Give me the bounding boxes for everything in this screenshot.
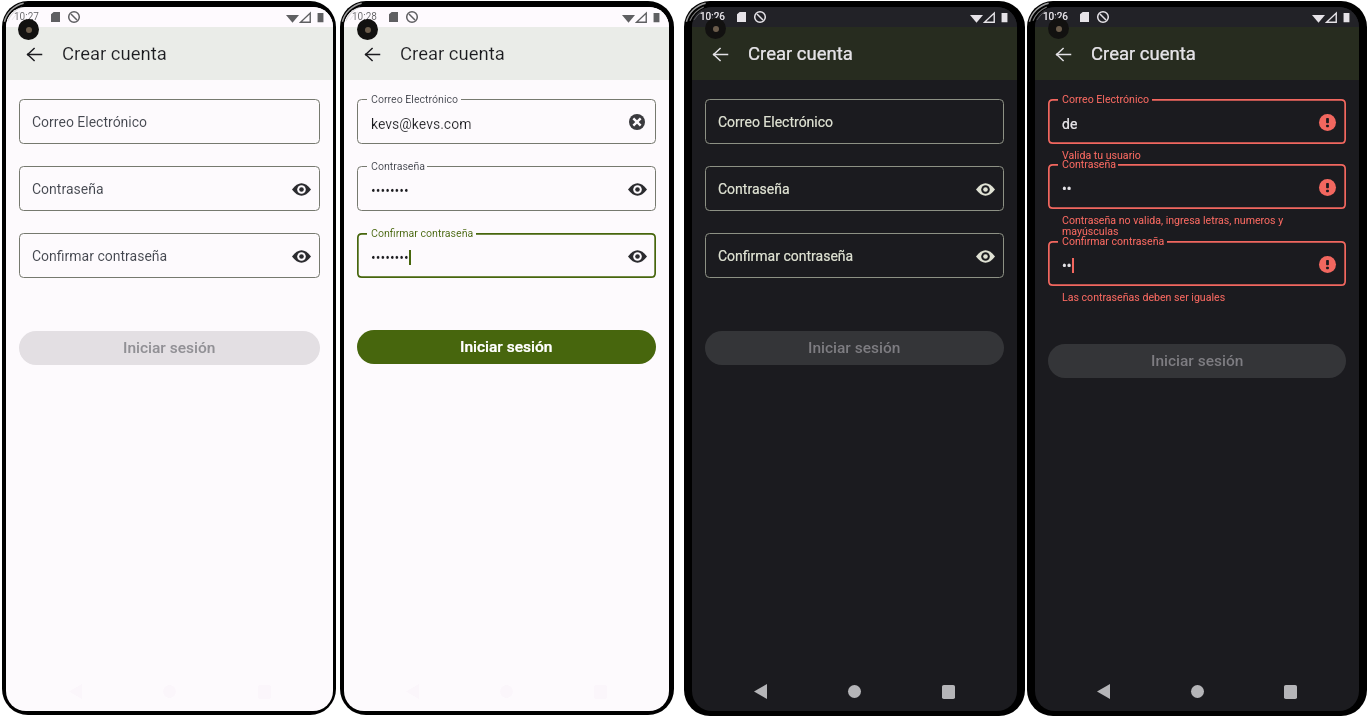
button[interactable]: Iniciar sesión xyxy=(1048,344,1346,378)
button[interactable]: Show password xyxy=(623,175,651,203)
staticText: Confirmar contraseña xyxy=(32,248,168,264)
button[interactable]: Back xyxy=(704,38,736,70)
button[interactable]: Iniciar sesión xyxy=(705,331,1004,365)
staticText: Iniciar sesión xyxy=(123,339,216,357)
staticText: Correo Electrónico xyxy=(718,114,834,130)
button[interactable]: Correo Electrónico xyxy=(1048,99,1346,144)
staticText: Confirmar contraseña xyxy=(718,248,854,264)
button[interactable]: Clear text xyxy=(623,108,651,136)
staticText: Correo Electrónico xyxy=(32,114,148,130)
button[interactable]: Show password xyxy=(623,242,651,270)
staticText: Crear cuenta xyxy=(62,43,167,65)
button[interactable]: Back xyxy=(1078,672,1129,711)
staticText: 10:26 xyxy=(700,11,725,23)
staticText: •••••••• xyxy=(371,250,409,266)
button[interactable]: Recent apps xyxy=(1265,672,1316,711)
button[interactable]: Contraseña xyxy=(1048,164,1346,209)
button[interactable]: Iniciar sesión xyxy=(357,330,656,364)
button[interactable]: Show password xyxy=(287,242,315,270)
staticText: 10:26 xyxy=(1043,11,1068,23)
staticText: •••••••• xyxy=(371,183,409,199)
staticText: Crear cuenta xyxy=(1091,43,1196,65)
button[interactable]: Show password xyxy=(971,242,999,270)
button[interactable]: Confirmar contraseña xyxy=(357,233,656,278)
button[interactable]: Recent apps xyxy=(923,672,974,711)
staticText: kevs@kevs.com xyxy=(371,116,472,132)
staticText: Correo Electrónico xyxy=(1062,93,1150,105)
button[interactable]: Correo Electrónico xyxy=(357,99,656,144)
staticText: Contraseña xyxy=(1062,158,1117,170)
button[interactable]: Correo Electrónico xyxy=(705,99,1004,144)
button[interactable]: Confirmar contraseña xyxy=(1048,241,1346,286)
staticText: Confirmar contraseña xyxy=(1062,235,1165,247)
button[interactable]: Error xyxy=(1313,173,1341,201)
staticText: Confirmar contraseña xyxy=(371,227,474,239)
staticText: Contraseña xyxy=(371,160,426,172)
button[interactable]: Back xyxy=(1047,38,1079,70)
button[interactable]: Home xyxy=(1172,672,1223,711)
staticText: •• xyxy=(1062,258,1072,274)
button[interactable]: Correo Electrónico xyxy=(19,99,320,144)
button[interactable]: Error xyxy=(1313,250,1341,278)
button[interactable]: Iniciar sesión xyxy=(19,331,320,365)
staticText: de xyxy=(1062,116,1078,132)
staticText: Iniciar sesión xyxy=(460,338,553,356)
staticText: •• xyxy=(1062,181,1072,197)
staticText: Valida tu usuario xyxy=(1062,149,1346,161)
staticText: Correo Electrónico xyxy=(371,93,459,105)
button[interactable]: Confirmar contraseña xyxy=(705,233,1004,278)
button[interactable]: Show password xyxy=(287,175,315,203)
button[interactable]: Contraseña xyxy=(705,166,1004,211)
staticText: 10:28 xyxy=(352,11,377,23)
staticText: Contraseña xyxy=(718,181,790,197)
button[interactable]: Show password xyxy=(971,175,999,203)
staticText: Iniciar sesión xyxy=(1151,352,1244,370)
button[interactable]: Back xyxy=(356,38,388,70)
staticText: Contraseña no valida, ingresa letras, nu… xyxy=(1062,214,1346,238)
staticText: Contraseña xyxy=(32,181,104,197)
button[interactable]: Home xyxy=(829,672,880,711)
button[interactable]: Contraseña xyxy=(357,166,656,211)
button[interactable]: Back xyxy=(18,38,50,70)
staticText: Crear cuenta xyxy=(748,43,853,65)
staticText: 10:27 xyxy=(14,11,39,23)
staticText: Crear cuenta xyxy=(400,43,505,65)
button[interactable]: Error xyxy=(1313,108,1341,136)
button[interactable]: Back xyxy=(735,672,786,711)
button[interactable]: Contraseña xyxy=(19,166,320,211)
staticText: Las contraseñas deben ser iguales xyxy=(1062,291,1346,303)
button[interactable]: Confirmar contraseña xyxy=(19,233,320,278)
staticText: Iniciar sesión xyxy=(808,339,901,357)
